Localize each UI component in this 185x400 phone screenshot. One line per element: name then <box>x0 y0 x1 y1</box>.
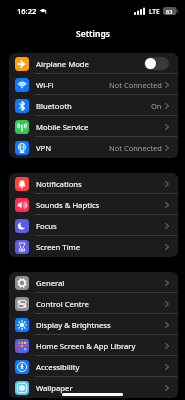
button[interactable]: VPN <box>9 137 178 158</box>
staticText: Not Connected <box>109 80 162 90</box>
staticText: Focus <box>36 221 57 231</box>
staticText: LTE <box>149 7 160 16</box>
staticText: Wi-Fi <box>36 80 54 90</box>
button[interactable]: Bluetooth <box>9 95 178 116</box>
staticText: 63 <box>166 8 173 15</box>
staticText: General <box>36 278 65 288</box>
staticText: On <box>151 101 162 111</box>
button[interactable]: General <box>9 272 178 293</box>
staticText: Sounds & Haptics <box>36 200 100 210</box>
button[interactable]: Sounds & Haptics <box>9 194 178 215</box>
staticText: Not Connected <box>109 143 162 153</box>
staticText: 16:22 <box>17 6 37 16</box>
button[interactable]: Home Screen & App Library <box>9 335 178 356</box>
button[interactable]: Display & Brightness <box>9 314 178 335</box>
staticText: Notifications <box>36 179 82 189</box>
staticText: Accessibility <box>36 362 80 372</box>
button[interactable]: Screen Time <box>9 236 178 257</box>
staticText: Settings <box>76 28 110 40</box>
staticText: Bluetooth <box>36 101 72 111</box>
staticText: Screen Time <box>36 242 81 252</box>
button[interactable]: Airplane Mode <box>9 53 178 74</box>
button[interactable]: Mobile Service <box>9 116 178 137</box>
staticText: Display & Brightness <box>36 320 111 330</box>
button[interactable]: Wallpaper <box>9 377 178 398</box>
button[interactable]: Control Centre <box>9 293 178 314</box>
staticText: Control Centre <box>36 299 89 309</box>
staticText: Airplane Mode <box>36 59 89 69</box>
button[interactable]: Wi-Fi <box>9 74 178 95</box>
button[interactable]: Notifications <box>9 173 178 194</box>
staticText: Wallpaper <box>36 383 73 393</box>
button[interactable]: Accessibility <box>9 356 178 377</box>
button[interactable]: Focus <box>9 215 178 236</box>
staticText: VPN <box>36 143 52 153</box>
staticText: Mobile Service <box>36 122 89 132</box>
button[interactable] <box>144 57 169 70</box>
staticText: Home Screen & App Library <box>36 341 136 351</box>
